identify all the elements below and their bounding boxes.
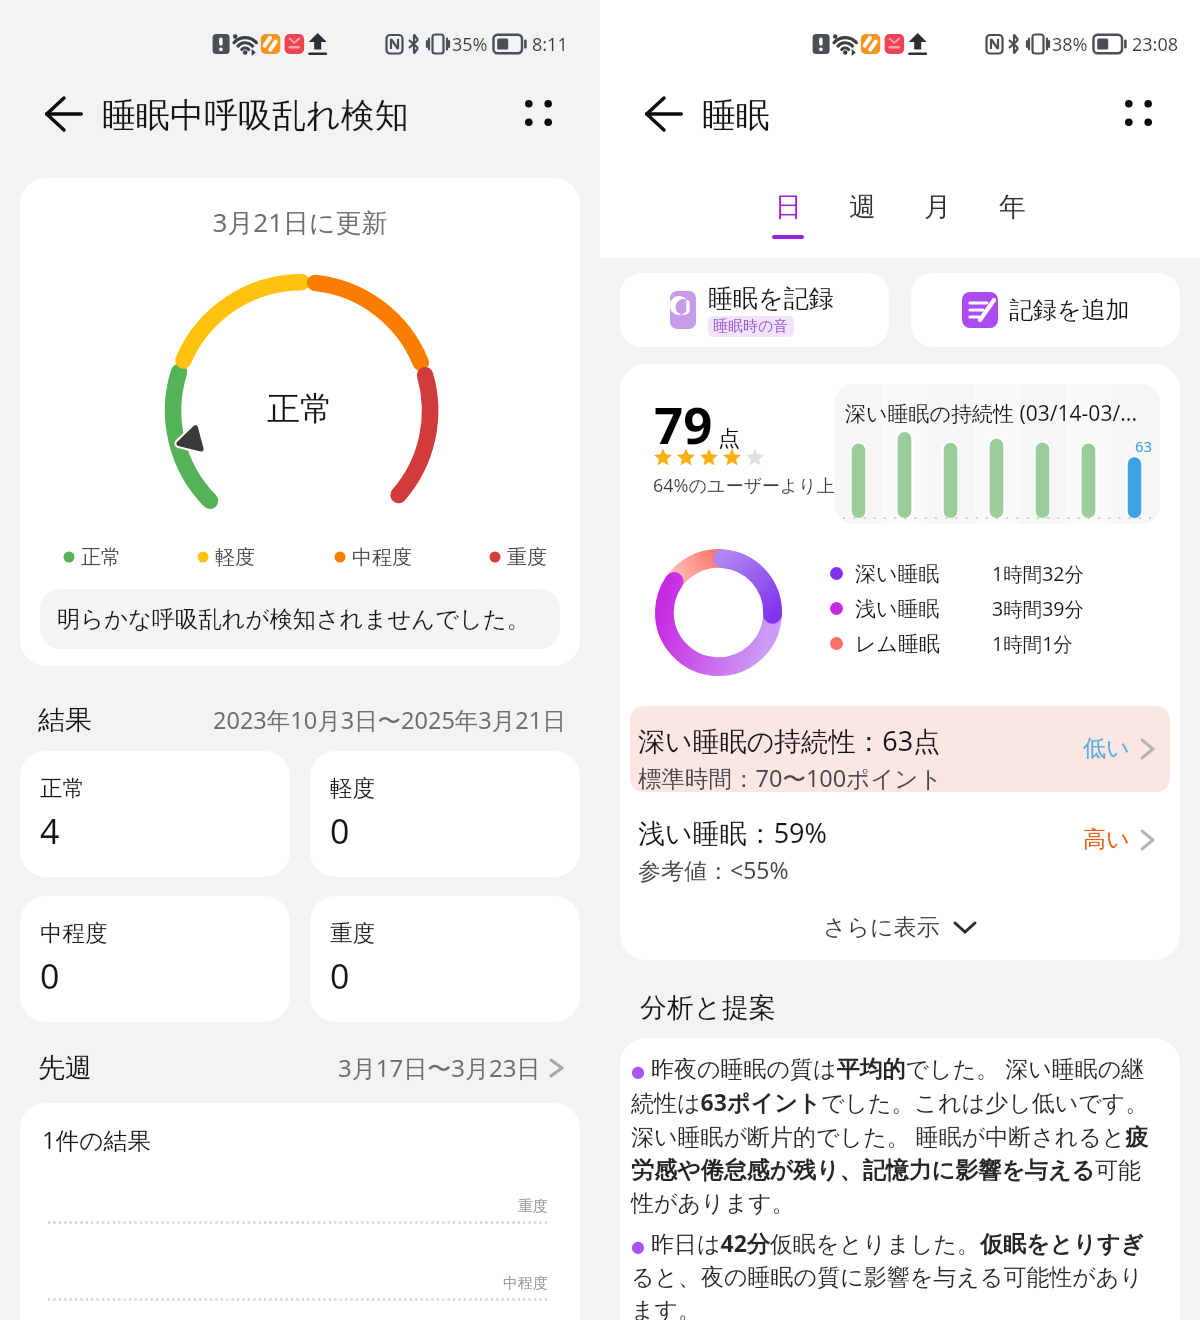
staticText: 浅い睡眠	[855, 596, 940, 622]
staticText: 浅い睡眠：59%	[638, 814, 827, 851]
staticText: さらに表示	[823, 913, 940, 942]
staticText: 3時間39分	[992, 595, 1084, 622]
button[interactable]: 中程度	[20, 896, 290, 1022]
staticText: 重度	[20, 1197, 548, 1216]
staticText: 低い	[1083, 734, 1130, 763]
staticText: 月	[924, 190, 951, 224]
staticText: 4	[40, 808, 60, 854]
staticText: 1件の結果	[42, 1124, 151, 1156]
button[interactable]: さらに表示	[620, 895, 1180, 959]
staticText: 0	[330, 808, 350, 854]
button[interactable]: Back	[630, 80, 698, 148]
staticText: 年	[999, 190, 1026, 224]
button[interactable]: 先週	[0, 1032, 600, 1103]
button[interactable]: 正常	[20, 751, 290, 877]
staticText: レム睡眠	[855, 631, 940, 657]
staticText: 睡眠	[702, 94, 770, 137]
button[interactable]: 記録を追加	[911, 273, 1180, 347]
staticText: 深い睡眠の持続性：63点	[638, 722, 941, 759]
staticText: 日	[775, 190, 802, 224]
button[interactable]: 週	[825, 176, 900, 258]
staticText: 深い睡眠の持続性 (03/14-03/...	[845, 399, 1138, 428]
staticText: 分析と提案	[640, 991, 776, 1025]
staticText: 23:08	[1132, 32, 1179, 57]
staticText: 重度	[330, 919, 375, 947]
staticText: 0	[40, 953, 60, 999]
button[interactable]: Back	[30, 80, 98, 148]
button[interactable]: 軽度	[310, 751, 580, 877]
staticText: 63	[1135, 436, 1153, 456]
staticText: 睡眠中呼吸乱れ検知	[102, 94, 409, 137]
staticText: ● 昨日は42分仮眠をとりました。仮眠をとりすぎると、夜の睡眠の質に影響を与える…	[631, 1227, 1162, 1320]
button[interactable]: 睡眠を記録	[620, 273, 889, 347]
staticText: 結果	[38, 703, 92, 737]
staticText: 軽度	[330, 774, 375, 802]
staticText: 中程度	[20, 1274, 548, 1293]
staticText: 2023年10月3日〜2025年3月21日	[213, 704, 566, 736]
staticText: 79	[654, 389, 713, 458]
button[interactable]: 重度	[310, 896, 580, 1022]
staticText: 重度	[507, 545, 547, 570]
button[interactable]: 浅い睡眠：59%	[620, 792, 1180, 895]
staticText: 3月17日〜3月23日	[338, 1051, 541, 1084]
staticText: 明らかな呼吸乱れが検知されませんでした。	[57, 605, 531, 634]
staticText: 正常	[267, 388, 333, 430]
staticText: ● 昨夜の睡眠の質は平均的でした。 深い睡眠の継続性は63ポイントでした。これは…	[631, 1052, 1162, 1217]
staticText: 深い睡眠	[855, 561, 940, 587]
staticText: 正常	[81, 545, 121, 570]
staticText: 1時間1分	[992, 630, 1073, 657]
staticText: 軽度	[215, 545, 255, 570]
staticText: 標準時間：70〜100ポイント	[638, 762, 943, 792]
staticText: 週	[849, 190, 876, 224]
staticText: 1時間32分	[992, 560, 1084, 587]
staticText: 38%	[1052, 32, 1088, 57]
staticText: 先週	[38, 1051, 92, 1085]
staticText: 点	[718, 425, 740, 453]
staticText: 8:11	[532, 32, 568, 57]
staticText: 正常	[40, 774, 85, 802]
staticText: 中程度	[40, 919, 108, 947]
staticText: 0	[330, 953, 350, 999]
button[interactable]: More options	[1108, 83, 1168, 143]
button[interactable]: 日	[750, 176, 825, 258]
staticText: 参考値：<55%	[638, 854, 789, 885]
staticText: 64%のユーザーより上	[653, 473, 835, 498]
staticText: 中程度	[352, 545, 412, 570]
staticText: 記録を追加	[1009, 295, 1130, 325]
button[interactable]: 年	[975, 176, 1050, 258]
button[interactable]: 月	[900, 176, 975, 258]
staticText: 35%	[452, 32, 488, 57]
staticText: 睡眠を記録	[708, 283, 834, 314]
button[interactable]: More options	[508, 83, 568, 143]
staticText: 高い	[1083, 825, 1130, 854]
staticText: 3月21日に更新	[20, 204, 580, 240]
staticText: 睡眠時の音	[713, 317, 789, 336]
button[interactable]: 深い睡眠の持続性：63点	[630, 706, 1170, 792]
